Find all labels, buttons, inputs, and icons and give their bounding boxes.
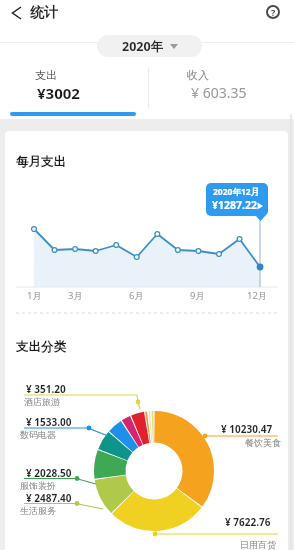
staticText: 2020年12月: [213, 186, 260, 198]
staticText: 每月支出: [16, 154, 66, 170]
button[interactable]: [147, 58, 294, 119]
staticText: ¥ 7622.76: [225, 515, 271, 529]
staticText: ¥3002: [37, 83, 80, 103]
staticText: 服饰装扮: [20, 480, 56, 491]
staticText: 生活服务: [20, 505, 56, 516]
staticText: 2020年: [122, 38, 164, 55]
staticText: 统计: [30, 4, 58, 22]
staticText: ?: [271, 6, 276, 18]
staticText: ¥ 603.35: [191, 83, 247, 102]
staticText: 数码电器: [20, 429, 56, 440]
staticText: ¥1287.22: [212, 198, 257, 212]
button[interactable]: ?: [266, 5, 280, 19]
staticText: ¥ 1533.00: [26, 415, 72, 429]
staticText: 12月: [247, 289, 268, 302]
staticText: ¥ 2028.50: [26, 466, 72, 480]
button[interactable]: [0, 58, 147, 119]
staticText: 6月: [129, 289, 144, 302]
staticText: 支出分类: [16, 339, 66, 355]
staticText: ¥ 10230.47: [221, 422, 273, 436]
staticText: 酒店旅游: [24, 396, 60, 407]
staticText: ¥ 351.20: [26, 382, 66, 396]
staticText: 日用百货: [240, 539, 276, 550]
staticText: 餐饮美食: [245, 437, 281, 448]
staticText: 9月: [190, 289, 205, 302]
button[interactable]: 2020年: [97, 35, 202, 57]
staticText: 收入: [187, 68, 209, 82]
staticText: 3月: [68, 289, 83, 302]
button[interactable]: [4, 2, 28, 24]
staticText: 支出: [35, 68, 57, 82]
staticText: 1月: [27, 289, 42, 302]
staticText: ¥ 2487.40: [26, 491, 72, 505]
